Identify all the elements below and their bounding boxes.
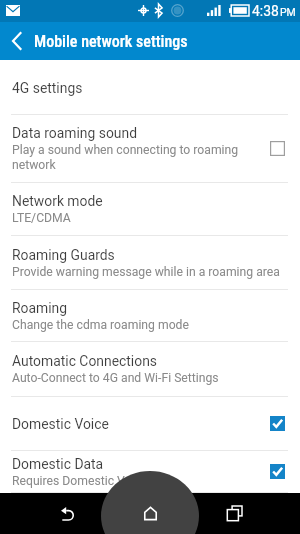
button[interactable]: Network mode: [0, 183, 300, 236]
button[interactable]: Automatic Connections: [0, 342, 300, 397]
staticText: Change the cdma roaming mode: [12, 318, 189, 332]
button[interactable]: Domestic Data: [0, 451, 300, 493]
staticText: Mobile network settings: [34, 32, 188, 51]
button[interactable]: Data roaming sound: [0, 115, 300, 183]
staticText: Domestic Voice: [12, 416, 109, 432]
staticText: 4G settings: [12, 80, 83, 96]
staticText: Domestic Data: [12, 456, 104, 472]
staticText: 4:38: [252, 3, 279, 19]
button[interactable]: Domestic Voice: [0, 397, 300, 451]
staticText: Network mode: [12, 193, 103, 209]
staticText: Roaming: [12, 300, 68, 316]
staticText: Data roaming sound: [12, 125, 137, 141]
staticText: PM: [280, 6, 296, 18]
button[interactable]: Back: [0, 22, 34, 60]
button[interactable]: Home: [128, 493, 172, 534]
staticText: Play a sound when connecting to roaming …: [12, 143, 244, 172]
staticText: Automatic Connections: [12, 353, 157, 369]
staticText: LTE/CDMA: [12, 211, 71, 225]
button[interactable]: Recent apps: [212, 493, 256, 534]
staticText: Provide warning message while in a roami…: [12, 265, 280, 279]
button[interactable]: Roaming: [0, 290, 300, 342]
button[interactable]: Back: [45, 493, 89, 534]
staticText: Auto-Connect to 4G and Wi-Fi Settings: [12, 371, 219, 385]
staticText: Requires Domestic Voice: [12, 474, 148, 488]
staticText: Roaming Guards: [12, 247, 115, 263]
button[interactable]: Roaming Guards: [0, 236, 300, 290]
